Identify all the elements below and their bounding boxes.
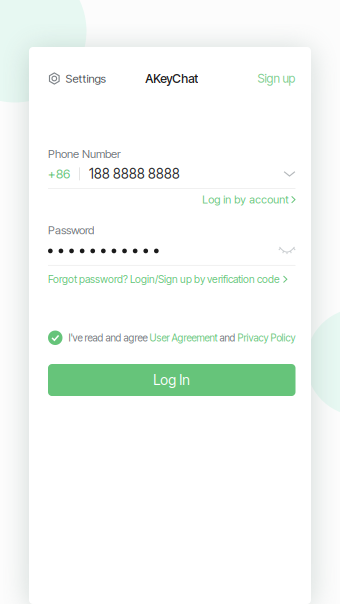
button[interactable]: Show password — [278, 246, 295, 256]
button[interactable]: Log In — [48, 364, 295, 396]
staticText: +86 — [48, 166, 70, 181]
button[interactable]: Forgot password? Login/Sign up by verifi… — [48, 270, 295, 288]
staticText: Phone Number — [48, 147, 121, 161]
staticText: Log in by account — [202, 193, 288, 206]
staticText: Password — [48, 223, 94, 237]
button[interactable]: Log in by account — [48, 190, 295, 209]
staticText: Log In — [153, 372, 190, 388]
button[interactable]: Select country code — [283, 167, 295, 181]
staticText: Privacy Policy — [237, 332, 295, 344]
staticText: 188 8888 8888 — [89, 166, 180, 182]
staticText: I've read and agree — [68, 332, 149, 344]
staticText: User Agreement — [149, 332, 217, 344]
staticText: and — [217, 332, 237, 344]
button[interactable]: Settings — [48, 66, 106, 91]
staticText: AKeyChat — [145, 71, 198, 86]
button[interactable]: Sign up — [257, 65, 295, 92]
staticText: Sign up — [257, 71, 295, 86]
staticText: Settings — [66, 72, 106, 85]
button[interactable]: Accept agreement — [48, 330, 62, 345]
staticText: Forgot password? Login/Sign up by verifi… — [48, 273, 280, 285]
